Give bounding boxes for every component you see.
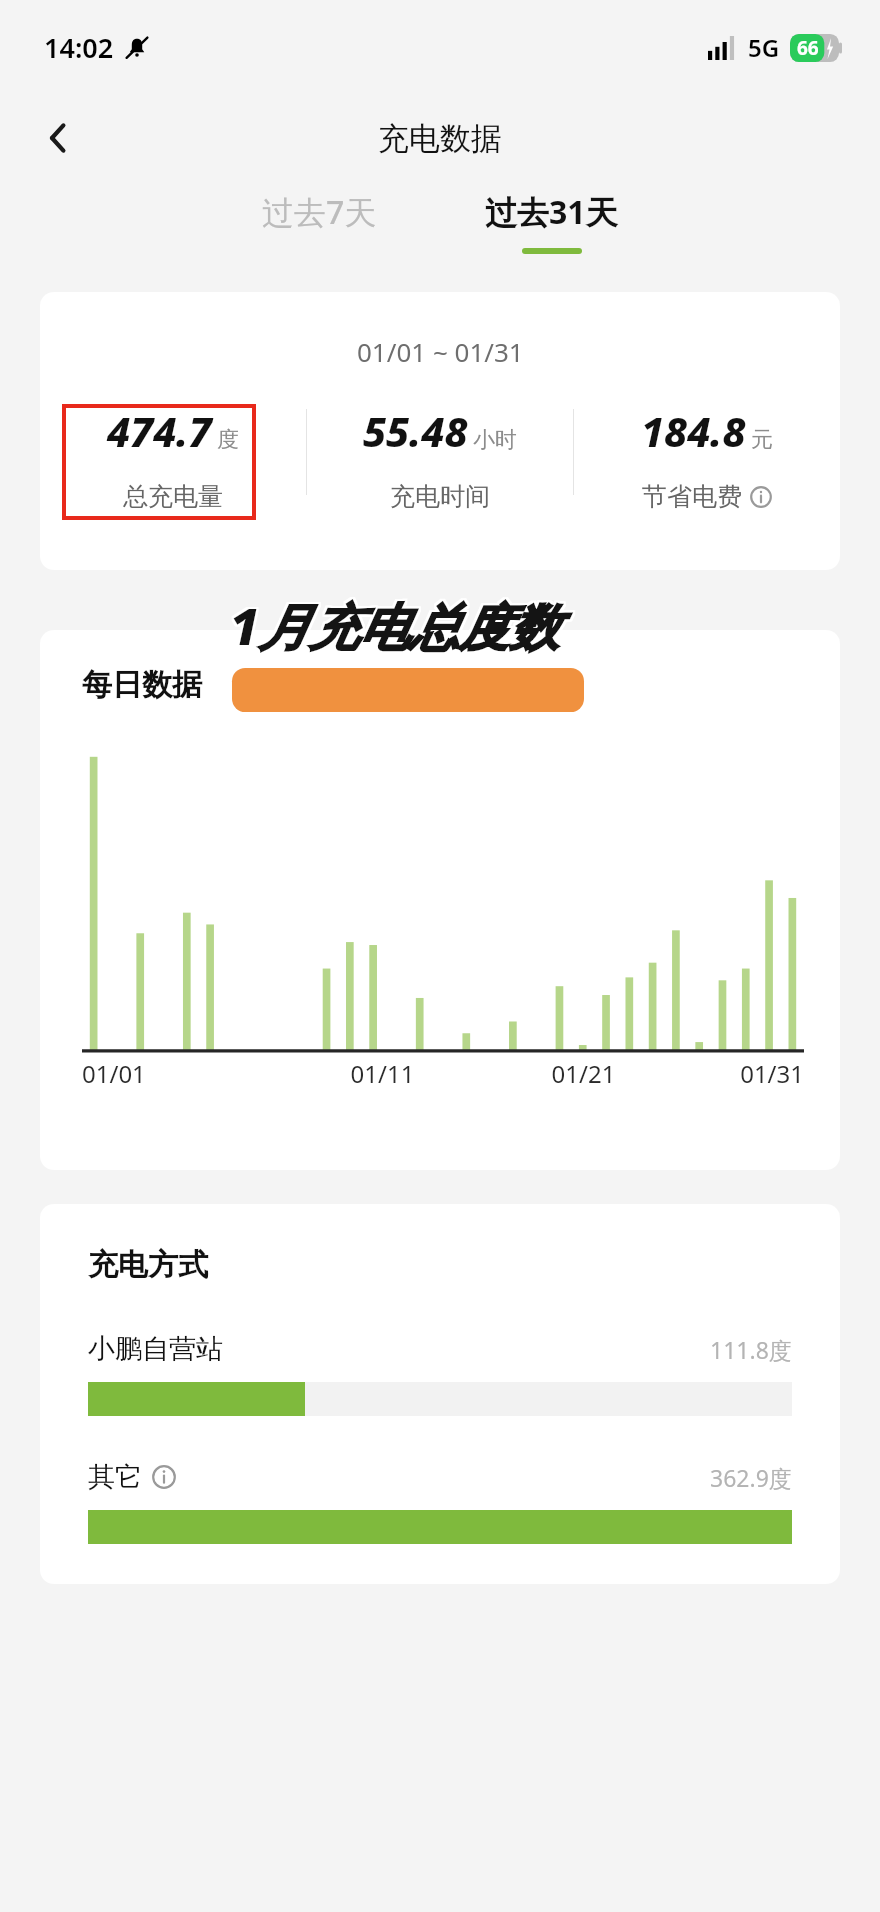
staticText: 1月充电总度数 <box>228 591 557 659</box>
button[interactable]: 过去31天 <box>471 182 632 262</box>
staticText: 1月充电总度数 <box>228 594 557 662</box>
button[interactable]: 184.8 <box>574 403 840 512</box>
button[interactable]: 01/01 ~ 01/31 <box>40 292 840 570</box>
staticText: 1月充电总度数 <box>228 592 557 660</box>
staticText: 01/31 <box>684 1057 804 1090</box>
staticText: 1月充电总度数 <box>230 594 559 662</box>
staticText: 01/21 <box>483 1057 684 1090</box>
staticText: 过去7天 <box>262 190 377 234</box>
staticText: 1月充电总度数 <box>231 593 560 661</box>
staticText: 1月充电总度数 <box>231 594 560 662</box>
staticText: 充电时间 <box>390 481 490 512</box>
staticText: 111.8度 <box>710 1334 792 1365</box>
staticText: 充电数据 <box>378 119 502 158</box>
staticText: 充电方式 <box>88 1246 208 1284</box>
staticText: 1月充电总度数 <box>232 594 561 662</box>
button[interactable]: 充电方式 <box>40 1204 840 1584</box>
button[interactable]: 每日数据 <box>40 630 840 1170</box>
staticText: 14:02 <box>44 29 114 66</box>
staticText: 1月充电总度数 <box>229 592 558 660</box>
staticText: 1月充电总度数 <box>232 593 561 661</box>
staticText: 184.8 <box>641 403 746 459</box>
staticText: 1月充电总度数 <box>229 593 558 661</box>
staticText: 度 <box>217 426 239 454</box>
staticText: 1月充电总度数 <box>232 590 561 658</box>
staticText: 小鹏自营站 <box>88 1332 223 1366</box>
staticText: 过去31天 <box>485 190 618 234</box>
staticText: 小时 <box>473 426 517 454</box>
staticText: 1月充电总度数 <box>230 590 559 658</box>
staticText: 节省电费 <box>642 481 742 512</box>
staticText: 总充电量 <box>123 481 223 512</box>
button[interactable]: 55.48 <box>307 403 573 512</box>
staticText: 1月充电总度数 <box>229 591 558 659</box>
button[interactable]: Back <box>28 108 88 168</box>
staticText: 每日数据 <box>82 666 202 704</box>
staticText: 1月充电总度数 <box>228 590 557 658</box>
staticText: 1月充电总度数 <box>231 591 560 659</box>
staticText: 其它 <box>88 1460 142 1494</box>
staticText: 1月充电总度数 <box>229 594 558 662</box>
staticText: 1月充电总度数 <box>229 590 558 658</box>
staticText: 1月充电总度数 <box>232 592 561 660</box>
staticText: 5G <box>748 31 780 64</box>
staticText: 01/11 <box>282 1057 483 1090</box>
staticText: 1月充电总度数 <box>231 590 560 658</box>
staticText: 66 <box>797 35 819 61</box>
staticText: 1月充电总度数 <box>231 592 560 660</box>
staticText: 01/01 <box>82 1057 282 1090</box>
staticText: 1月充电总度数 <box>230 593 559 661</box>
button[interactable]: 过去7天 <box>248 182 391 256</box>
staticText: 1月充电总度数 <box>230 592 559 660</box>
button[interactable]: 其它 <box>88 1460 792 1544</box>
staticText: 元 <box>751 426 773 454</box>
staticText: 01/01 ~ 01/31 <box>357 334 524 369</box>
staticText: 474.7 <box>107 403 212 459</box>
staticText: 362.9度 <box>710 1462 792 1493</box>
button[interactable]: 474.7 <box>40 403 306 512</box>
staticText: 55.48 <box>363 403 468 459</box>
staticText: 1月充电总度数 <box>232 591 561 659</box>
staticText: 1月充电总度数 <box>230 591 559 659</box>
button[interactable]: 小鹏自营站 <box>88 1332 792 1416</box>
staticText: 1月充电总度数 <box>228 593 557 661</box>
